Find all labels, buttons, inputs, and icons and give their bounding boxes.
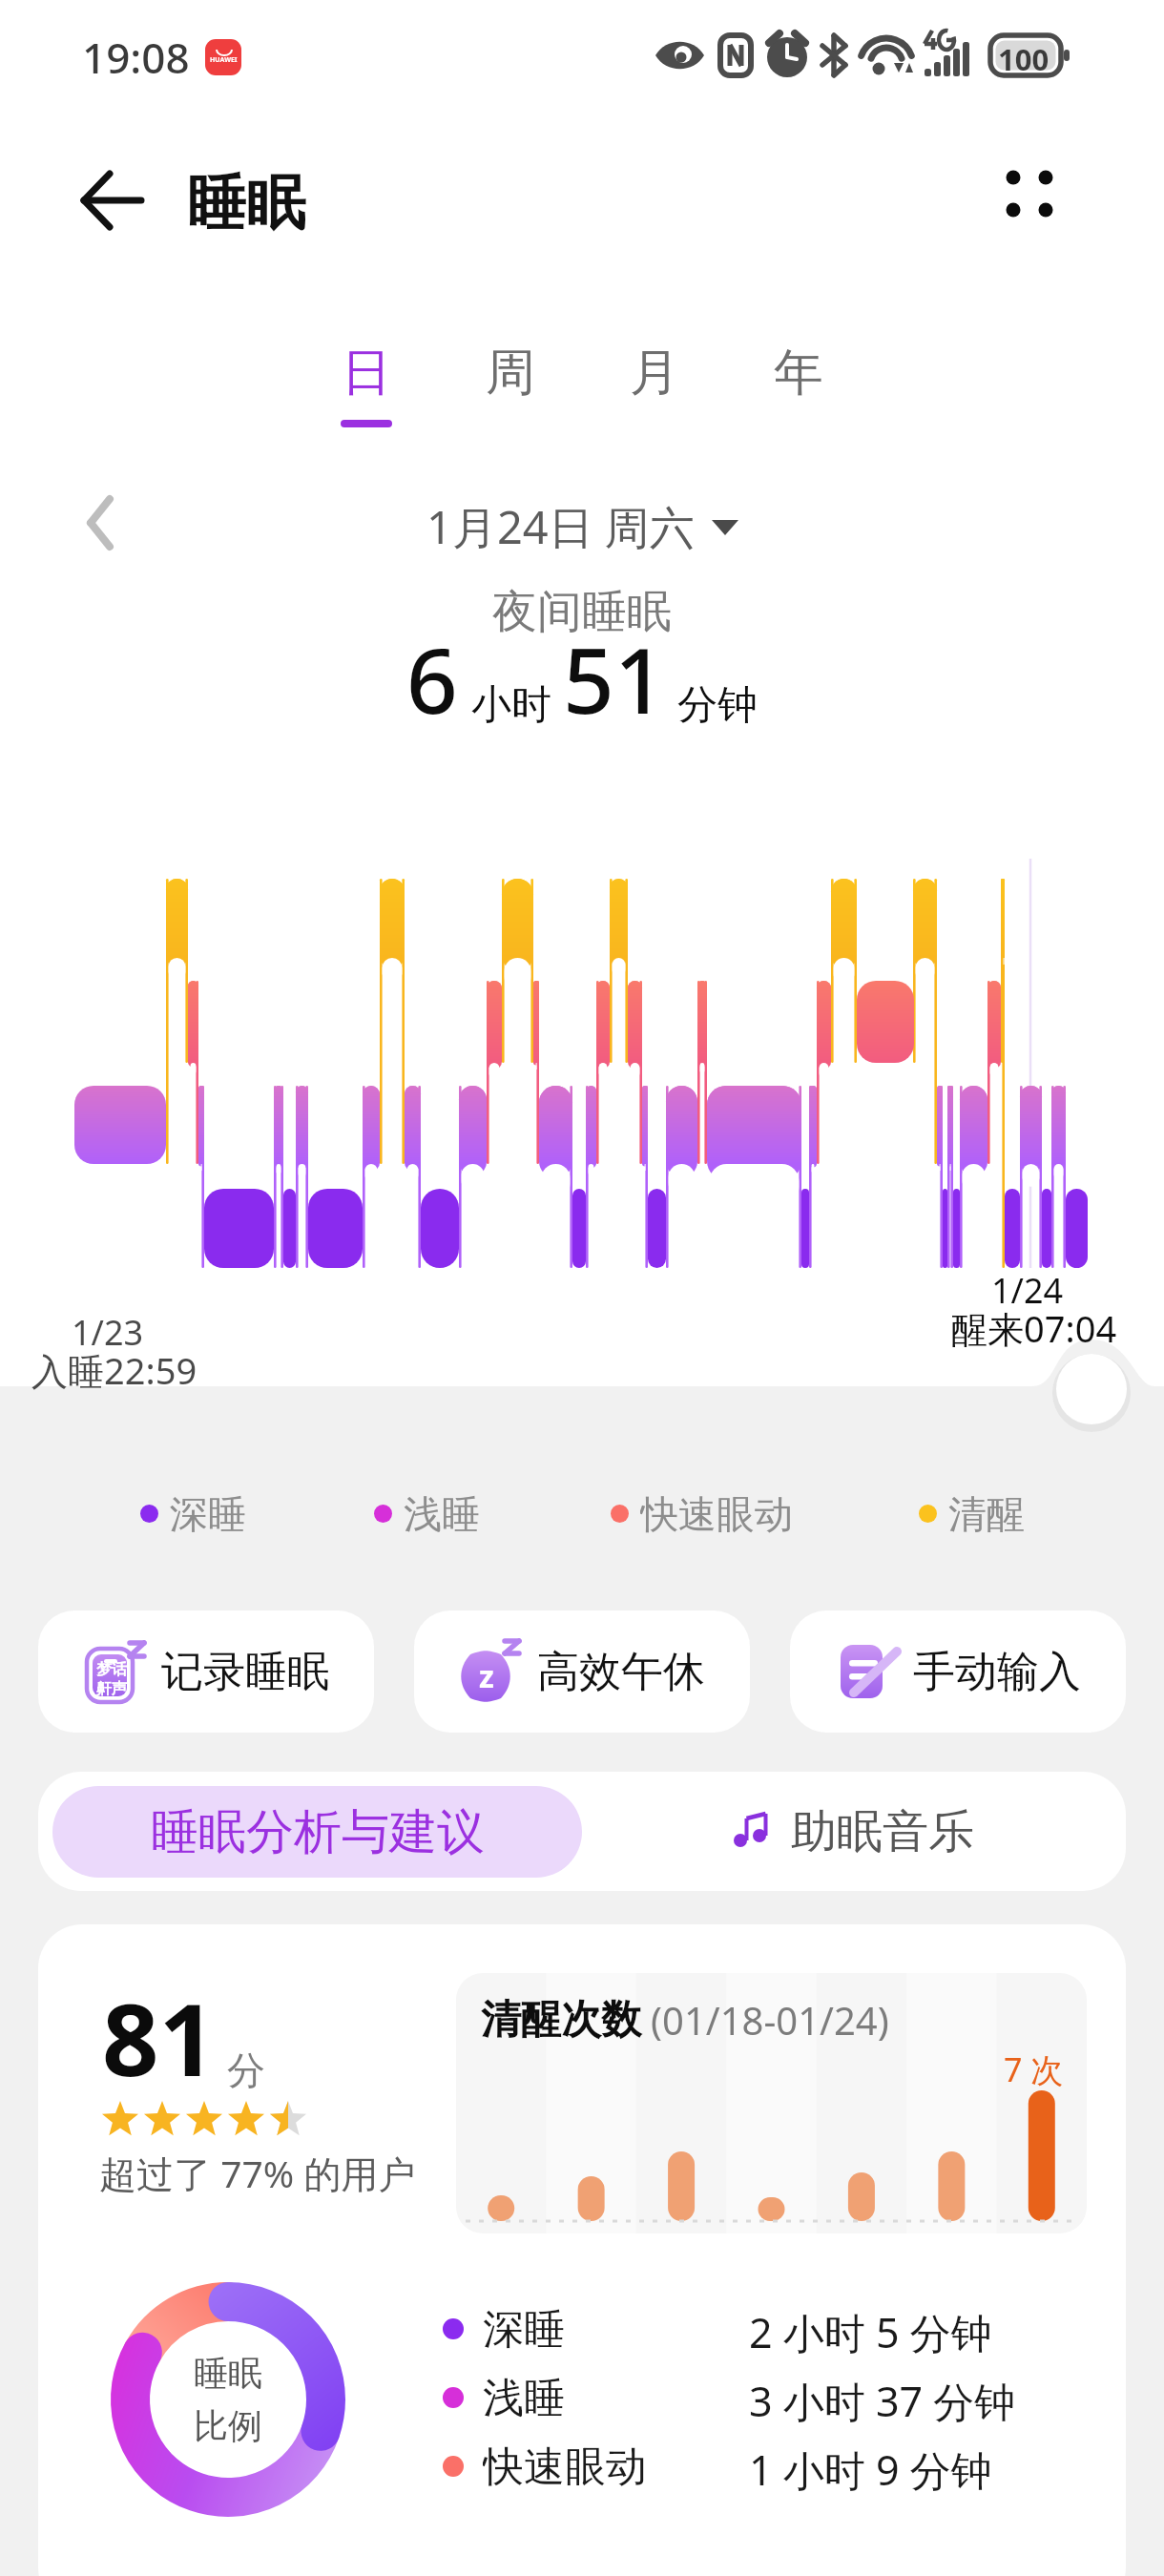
staticText: 浅睡 — [404, 1490, 480, 1536]
staticText: 睡眠 — [194, 2352, 262, 2395]
button[interactable]: More options — [977, 141, 1082, 246]
staticText: 3 小时 37 分钟 — [749, 2373, 1016, 2422]
staticText: 月 — [630, 342, 679, 405]
button[interactable]: 年 — [726, 342, 870, 456]
button[interactable]: 助眠音乐 — [582, 1772, 1126, 1891]
staticText: 快速眼动 — [640, 1490, 793, 1536]
button[interactable]: z — [414, 1610, 750, 1733]
staticText: 深睡 — [483, 2304, 565, 2354]
staticText: 比例 — [194, 2404, 262, 2447]
button[interactable]: 手动输入 — [790, 1610, 1126, 1733]
button[interactable]: 睡眠分析与建议 — [52, 1786, 582, 1878]
staticText: 助眠音乐 — [791, 1803, 974, 1860]
staticText: 分 — [227, 2046, 265, 2094]
staticText: 高效午休 — [537, 1646, 705, 1698]
staticText: 51 — [563, 618, 666, 740]
staticText: z — [479, 1655, 494, 1697]
staticText: 睡眠分析与建议 — [151, 1802, 485, 1862]
button[interactable]: 1月24日 周六 — [417, 490, 748, 563]
staticText: 浅睡 — [483, 2373, 565, 2422]
staticText: 周 — [486, 342, 535, 405]
button[interactable]: 梦话 — [38, 1610, 374, 1733]
staticText: 手动输入 — [913, 1646, 1081, 1698]
staticText: 清醒次数 — [481, 1995, 641, 2046]
staticText: 100 — [998, 39, 1050, 79]
staticText: HUAWEI — [210, 55, 238, 65]
staticText: 小时 — [471, 680, 551, 731]
staticText: 快速眼动 — [483, 2441, 647, 2491]
staticText: 入睡22:59 — [31, 1345, 197, 1395]
button[interactable]: 周 — [438, 342, 582, 456]
staticText: 梦话 — [96, 1660, 127, 1679]
staticText: 分钟 — [677, 680, 758, 731]
staticText: 记录睡眠 — [161, 1646, 329, 1698]
staticText: 6 — [406, 618, 458, 740]
staticText: 睡眠 — [187, 166, 305, 240]
staticText: 夜间睡眠 — [492, 584, 672, 640]
staticText: (01/18-01/24) — [651, 1994, 889, 2046]
button[interactable]: Previous day — [59, 485, 135, 561]
staticText: 2 小时 5 分钟 — [749, 2304, 992, 2354]
staticText: 年 — [774, 342, 823, 405]
staticText: 1 小时 9 分钟 — [749, 2441, 992, 2491]
staticText: 醒来07:04 — [951, 1303, 1117, 1353]
staticText: 深睡 — [170, 1490, 246, 1536]
button[interactable]: Expand sleep chart — [1050, 1347, 1133, 1431]
button[interactable]: 日 — [294, 342, 438, 456]
staticText: 81 — [102, 1970, 216, 2106]
button[interactable]: 月 — [582, 342, 726, 456]
staticText: 日 — [342, 342, 391, 405]
staticText: 7 次 — [1004, 2047, 1064, 2091]
staticText: 1/24 — [991, 1267, 1064, 1314]
staticText: 鼾声 — [96, 1679, 127, 1698]
button[interactable]: Back — [62, 150, 161, 249]
staticText: 1/23 — [72, 1309, 144, 1356]
staticText: 1月24日 周六 — [426, 496, 695, 557]
staticText: 超过了 77% 的用户 — [99, 2148, 416, 2198]
staticText: 19:08 — [82, 29, 190, 86]
staticText: 清醒 — [948, 1490, 1025, 1536]
